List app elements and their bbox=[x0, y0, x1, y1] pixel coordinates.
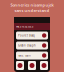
button[interactable]: Recipe bbox=[40, 61, 48, 70]
staticText: Gratin dauph bbox=[18, 44, 36, 47]
staticText: Mes recettes bbox=[16, 25, 33, 28]
button[interactable]: Recipe bbox=[28, 61, 36, 70]
staticText: sans understand bbox=[14, 8, 49, 13]
button[interactable]: Recipe bbox=[16, 61, 24, 70]
button[interactable]: Poulet Basq bbox=[16, 31, 48, 39]
staticText: Tarte tatin bbox=[18, 54, 31, 57]
staticText: Poulet Basq bbox=[18, 34, 35, 37]
staticText: Sonneries nisampujek bbox=[10, 2, 53, 7]
button[interactable]: Gratin dauph bbox=[16, 41, 48, 49]
button[interactable]: Tarte tatin bbox=[16, 51, 48, 59]
